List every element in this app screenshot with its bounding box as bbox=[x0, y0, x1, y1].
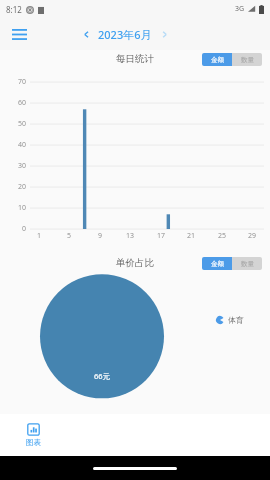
staticText: 70 bbox=[4, 77, 26, 87]
button[interactable]: 体育 bbox=[216, 315, 244, 325]
staticText: 图表 bbox=[26, 438, 41, 447]
staticText: 17 bbox=[151, 231, 171, 241]
button[interactable]: Next month bbox=[156, 26, 172, 42]
button[interactable]: 2023年6月 bbox=[98, 27, 152, 42]
staticText: 10 bbox=[4, 203, 26, 213]
button[interactable]: Menu bbox=[4, 19, 34, 49]
button[interactable]: 数量 bbox=[232, 53, 262, 66]
staticText: 13 bbox=[120, 231, 140, 241]
staticText: 数量 bbox=[241, 56, 254, 64]
staticText: 9 bbox=[90, 231, 110, 241]
staticText: 29 bbox=[242, 231, 262, 241]
staticText: 金额 bbox=[211, 260, 224, 268]
button[interactable]: 数量 bbox=[232, 257, 262, 270]
button[interactable]: 图表 bbox=[26, 423, 41, 447]
staticText: 1 bbox=[29, 231, 49, 241]
staticText: 50 bbox=[4, 119, 26, 129]
staticText: 40 bbox=[4, 140, 26, 150]
staticText: 8:12 bbox=[6, 4, 22, 15]
staticText: 单价占比 bbox=[116, 257, 154, 269]
staticText: 60 bbox=[4, 98, 26, 108]
button[interactable]: 金额 bbox=[202, 53, 232, 66]
staticText: 数量 bbox=[241, 260, 254, 268]
button[interactable]: Previous month bbox=[78, 26, 94, 42]
staticText: 66元 bbox=[82, 371, 122, 381]
staticText: 25 bbox=[212, 231, 232, 241]
button[interactable]: 金额 bbox=[202, 257, 232, 270]
staticText: 20 bbox=[4, 182, 26, 192]
staticText: 3G bbox=[235, 4, 245, 14]
staticText: 2023年6月 bbox=[98, 27, 152, 42]
staticText: 21 bbox=[181, 231, 201, 241]
staticText: 体育 bbox=[228, 315, 244, 325]
staticText: 0 bbox=[4, 224, 26, 234]
staticText: 金额 bbox=[211, 56, 224, 64]
staticText: 30 bbox=[4, 161, 26, 171]
staticText: 5 bbox=[59, 231, 79, 241]
staticText: 每日统计 bbox=[116, 53, 154, 65]
